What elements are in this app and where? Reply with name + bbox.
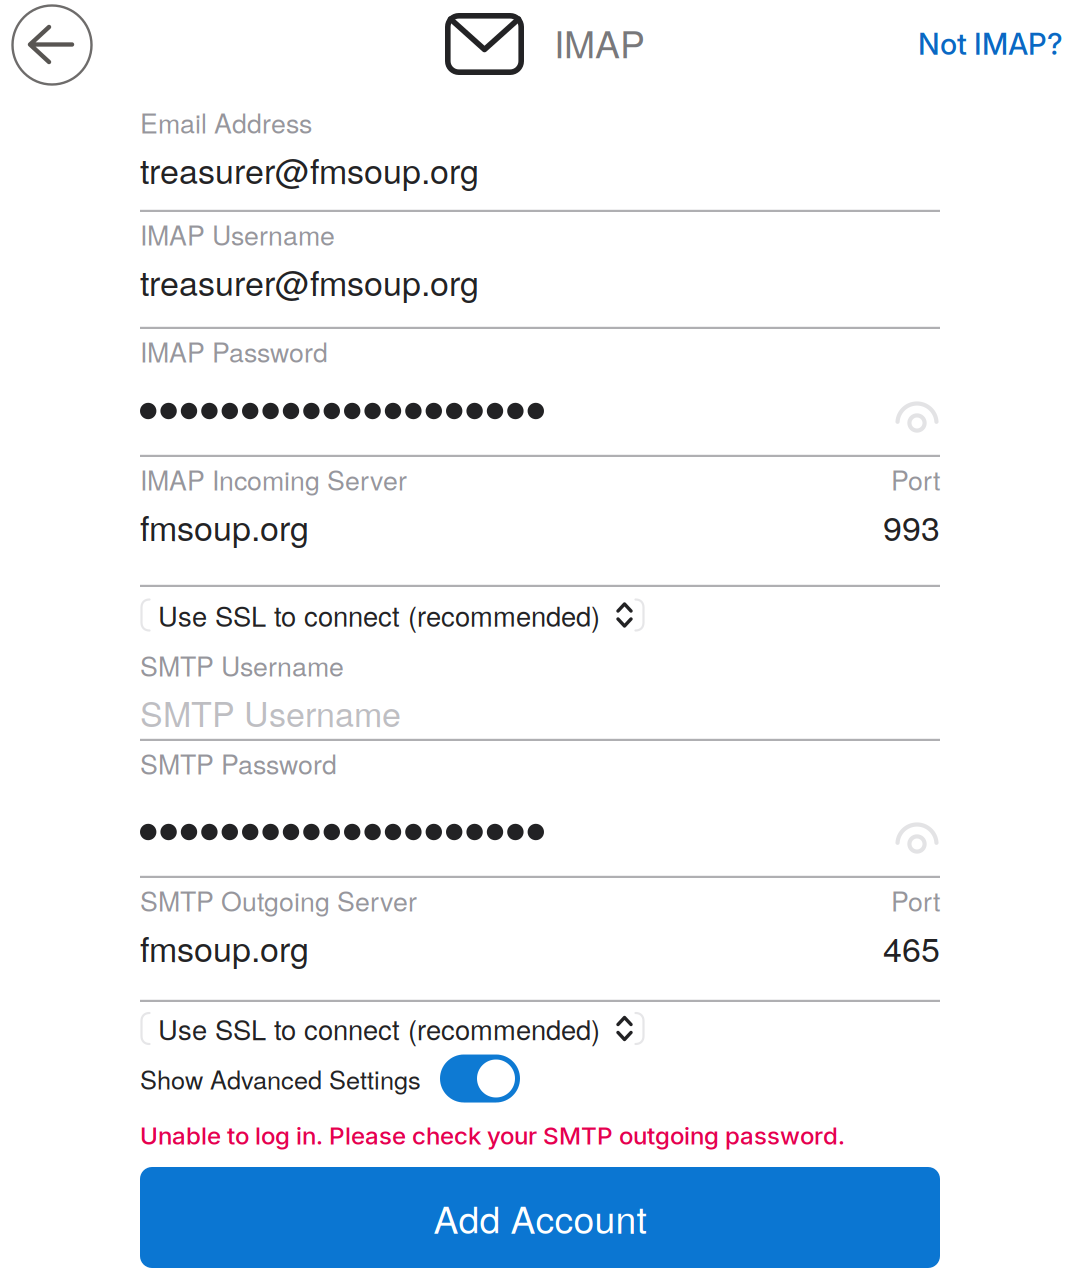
staticText: IMAP bbox=[554, 15, 645, 69]
staticText: SMTP Username bbox=[140, 646, 344, 684]
staticText: Not IMAP? bbox=[918, 26, 1063, 62]
staticText: IMAP Password bbox=[140, 332, 328, 370]
button[interactable]: Use SSL to connect (recommended) bbox=[140, 1006, 645, 1051]
staticText: Use SSL to connect (recommended) bbox=[158, 1009, 600, 1048]
button[interactable]: Back bbox=[6, 0, 98, 91]
staticText: Use SSL to connect (recommended) bbox=[158, 595, 600, 634]
staticText: 465 bbox=[883, 923, 940, 972]
staticText: Port bbox=[891, 460, 940, 498]
staticText: Show Advanced Settings bbox=[140, 1060, 421, 1097]
staticText: SMTP Outgoing Server bbox=[140, 881, 417, 919]
staticText: 993 bbox=[883, 502, 940, 551]
staticText: Add Account bbox=[433, 1191, 646, 1244]
staticText: SMTP Username bbox=[140, 688, 401, 737]
staticText: Email Address bbox=[140, 103, 312, 141]
button[interactable]: Add Account bbox=[140, 1167, 940, 1268]
staticText: SMTP Password bbox=[140, 744, 337, 782]
staticText: fmsoup.org bbox=[140, 502, 309, 551]
staticText: Port bbox=[891, 881, 940, 919]
staticText: IMAP Username bbox=[140, 215, 335, 253]
button[interactable]: Not IMAP? bbox=[899, 14, 1082, 74]
staticText: Unable to log in. Please check your SMTP… bbox=[140, 1121, 845, 1150]
staticText: treasurer@fmsoup.org bbox=[140, 145, 479, 194]
staticText: IMAP Incoming Server bbox=[140, 460, 407, 498]
button[interactable]: Use SSL to connect (recommended) bbox=[140, 592, 645, 637]
staticText: treasurer@fmsoup.org bbox=[140, 257, 479, 306]
staticText: fmsoup.org bbox=[140, 923, 309, 972]
